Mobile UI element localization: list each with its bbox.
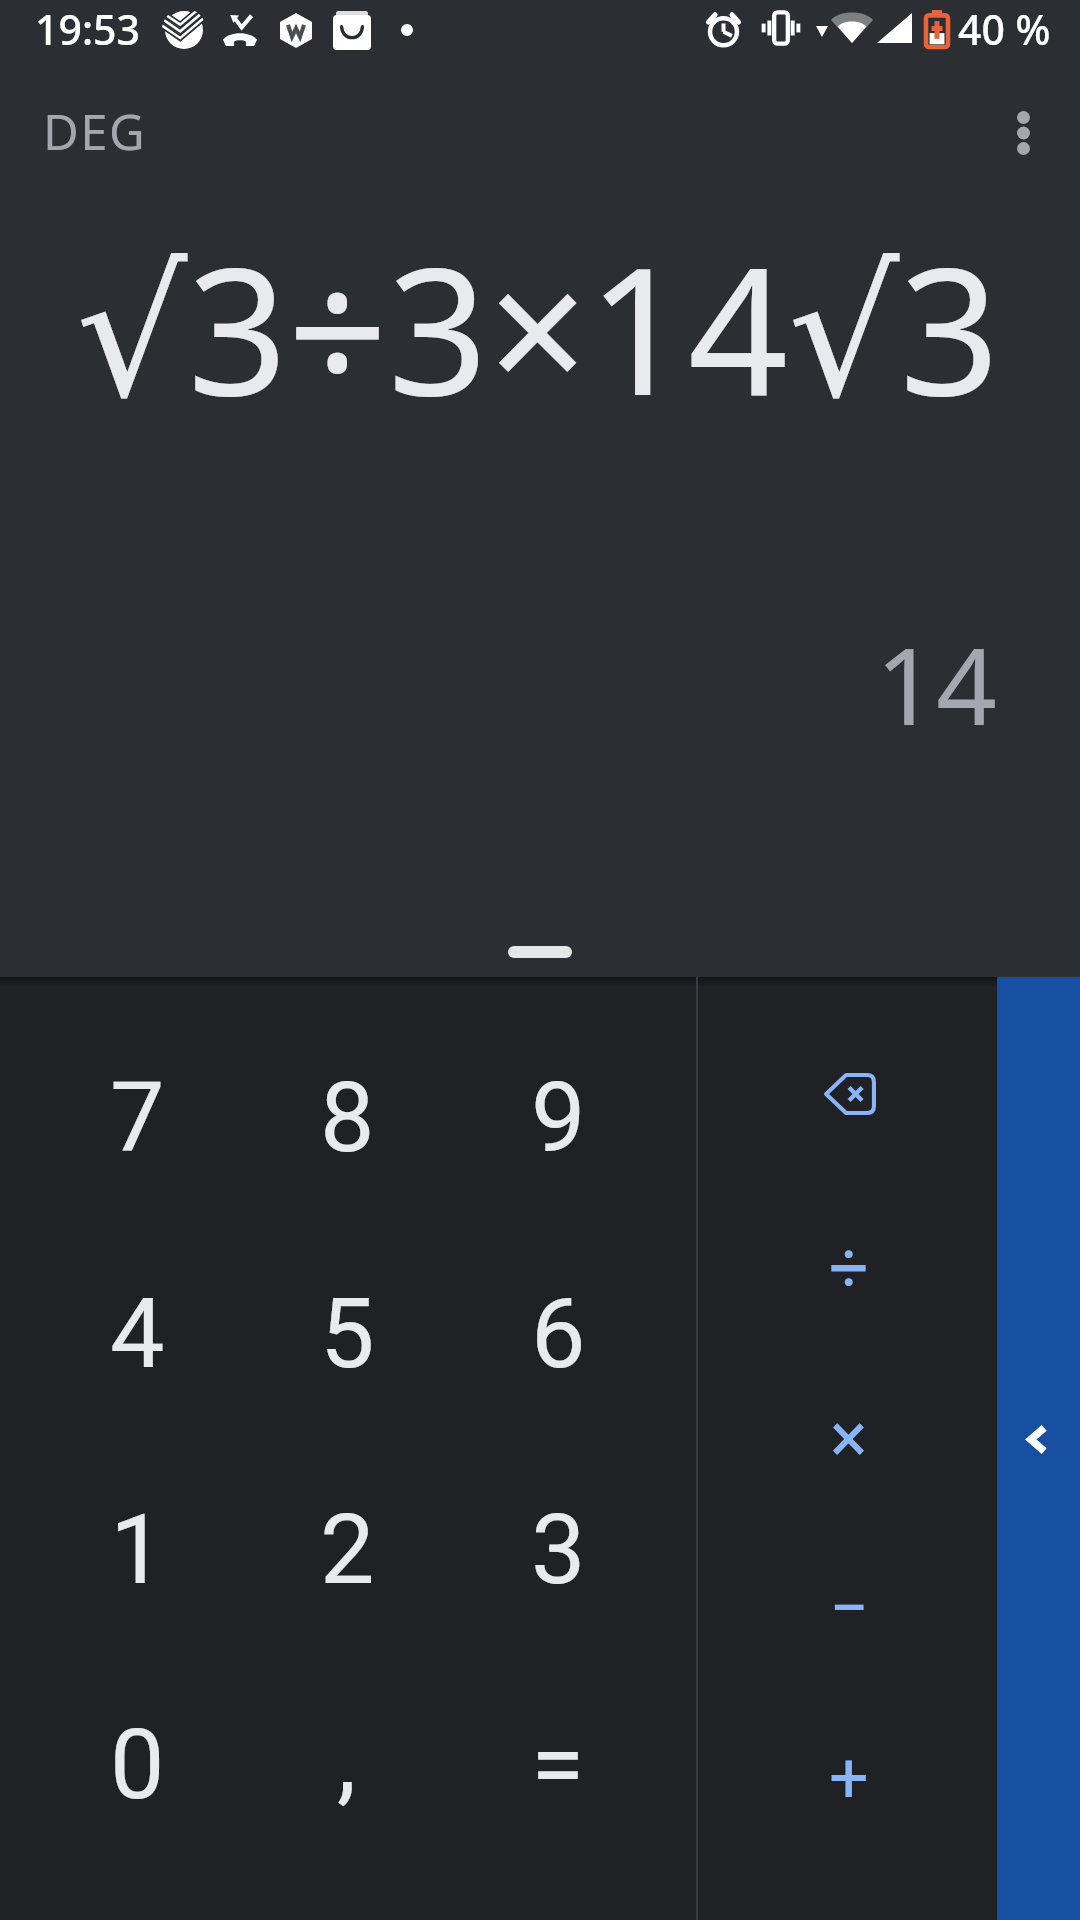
button[interactable]: 2: [231, 1442, 463, 1658]
button[interactable]: 0: [21, 1657, 253, 1873]
button[interactable]: DEG: [29, 92, 161, 171]
button[interactable]: 7: [21, 1010, 253, 1226]
staticText: 0: [110, 1708, 165, 1822]
button[interactable]: ×: [729, 1330, 969, 1546]
staticText: DEG: [43, 98, 147, 165]
button[interactable]: =: [442, 1657, 674, 1873]
staticText: 40 %: [958, 1, 1051, 57]
button[interactable]: −: [729, 1500, 969, 1716]
staticText: ,: [337, 1702, 357, 1816]
staticText: 8: [320, 1061, 375, 1175]
staticText: 14: [875, 612, 997, 756]
button[interactable]: 5: [231, 1226, 463, 1442]
button[interactable]: 3: [442, 1442, 674, 1658]
button[interactable]: +: [729, 1670, 969, 1886]
staticText: 1: [110, 1493, 165, 1607]
staticText: 3: [531, 1493, 586, 1607]
button[interactable]: 4: [21, 1226, 253, 1442]
button[interactable]: Backspace: [729, 986, 969, 1202]
staticText: 5: [320, 1277, 375, 1391]
staticText: 6: [531, 1277, 586, 1391]
button[interactable]: 6: [442, 1226, 674, 1442]
staticText: 9: [531, 1061, 586, 1175]
button[interactable]: 9: [442, 1010, 674, 1226]
button[interactable]: More options: [989, 99, 1057, 167]
staticText: 2: [320, 1493, 375, 1607]
button[interactable]: 8: [231, 1010, 463, 1226]
button[interactable]: ,: [231, 1651, 463, 1867]
staticText: √3÷3×14√3: [76, 208, 1000, 446]
staticText: ×: [830, 1397, 868, 1479]
button[interactable]: ÷: [729, 1160, 969, 1376]
staticText: =: [531, 1708, 585, 1822]
button[interactable]: 1: [21, 1442, 253, 1658]
staticText: ÷: [829, 1227, 869, 1309]
staticText: 7: [110, 1061, 165, 1175]
staticText: +: [829, 1737, 869, 1819]
staticText: 4: [110, 1277, 165, 1391]
staticText: −: [829, 1567, 870, 1649]
button[interactable]: Drag handle: [494, 932, 586, 972]
staticText: 19:53: [35, 1, 140, 57]
button[interactable]: Open advanced pad: [997, 977, 1080, 1920]
